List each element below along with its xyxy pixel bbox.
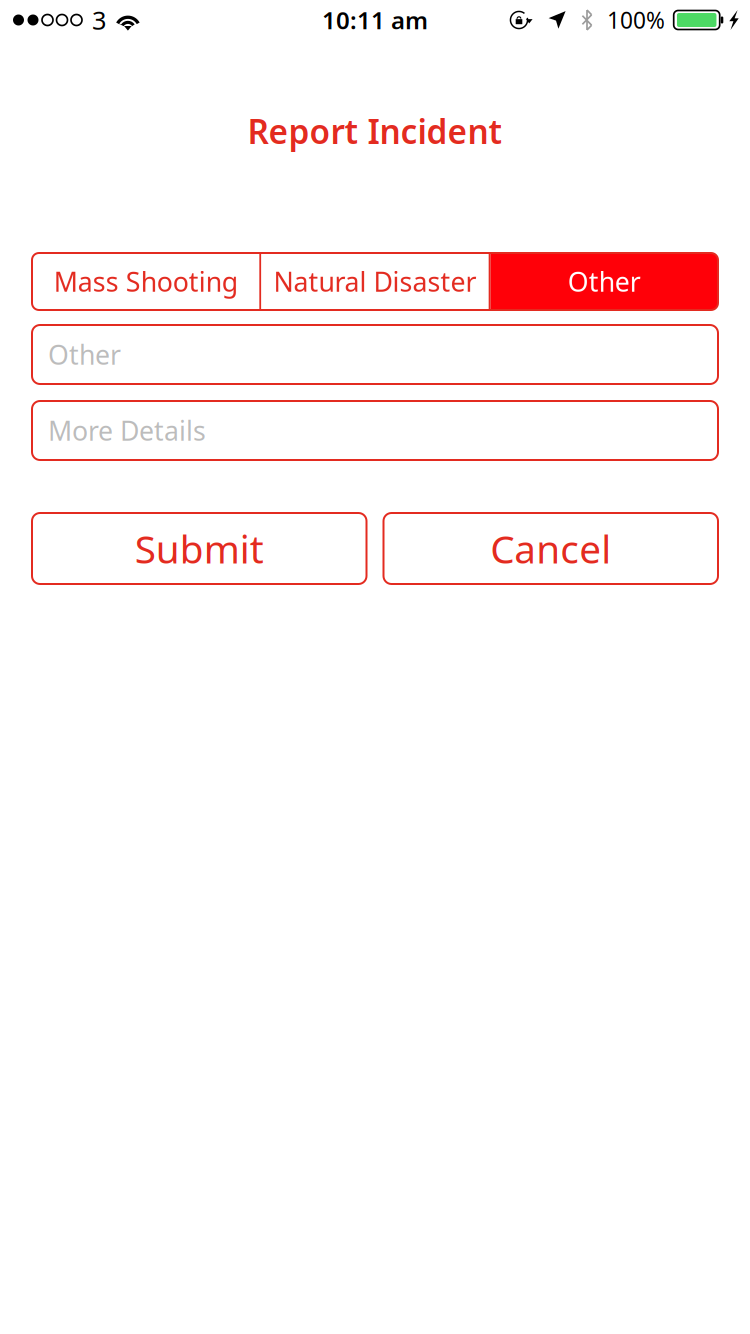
- staticText: Report Incident: [247, 109, 502, 153]
- staticText: 3: [92, 3, 106, 37]
- staticText: Submit: [135, 523, 264, 574]
- staticText: 10:11 am: [322, 4, 428, 36]
- staticText: Cancel: [490, 523, 611, 574]
- staticText: Other: [48, 337, 121, 372]
- staticText: Natural Disaster: [273, 264, 476, 299]
- staticText: More Details: [48, 413, 206, 448]
- button[interactable]: Submit: [32, 513, 366, 584]
- staticText: Mass Shooting: [54, 264, 238, 299]
- button[interactable]: Cancel: [383, 513, 718, 584]
- button[interactable]: Other: [491, 253, 718, 310]
- button[interactable]: Natural Disaster: [261, 253, 489, 310]
- button[interactable]: Mass Shooting: [32, 253, 259, 310]
- staticText: 100%: [607, 5, 665, 35]
- button[interactable]: More Details: [32, 401, 718, 460]
- button[interactable]: Other: [32, 325, 718, 384]
- staticText: Other: [568, 264, 641, 299]
